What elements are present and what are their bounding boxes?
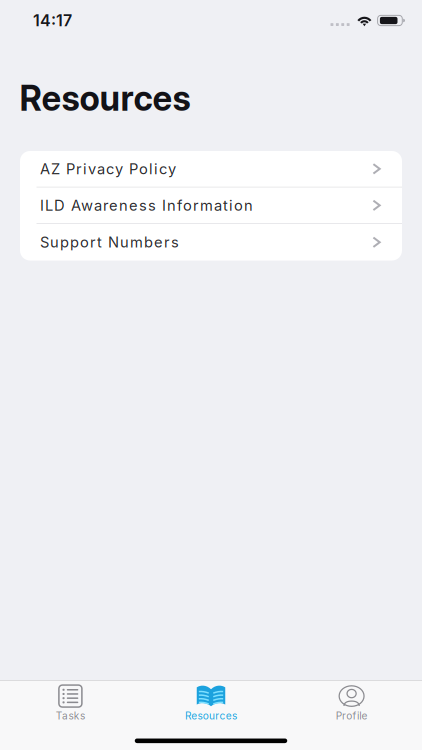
button[interactable]: Profile: [281, 681, 422, 730]
staticText: Resources: [185, 710, 237, 722]
staticText: AZ Privacy Policy: [40, 160, 176, 178]
staticText: Resources: [19, 77, 190, 119]
button[interactable]: Tasks: [0, 681, 141, 730]
button[interactable]: ILD Awareness Information: [20, 187, 402, 224]
staticText: 14:17: [33, 11, 72, 30]
staticText: ILD Awareness Information: [40, 196, 253, 214]
staticText: Tasks: [56, 710, 85, 722]
button[interactable]: Support Numbers: [20, 224, 402, 260]
button[interactable]: Resources: [141, 681, 281, 730]
staticText: Profile: [336, 710, 367, 722]
button[interactable]: AZ Privacy Policy: [20, 151, 402, 187]
staticText: Support Numbers: [40, 233, 179, 251]
